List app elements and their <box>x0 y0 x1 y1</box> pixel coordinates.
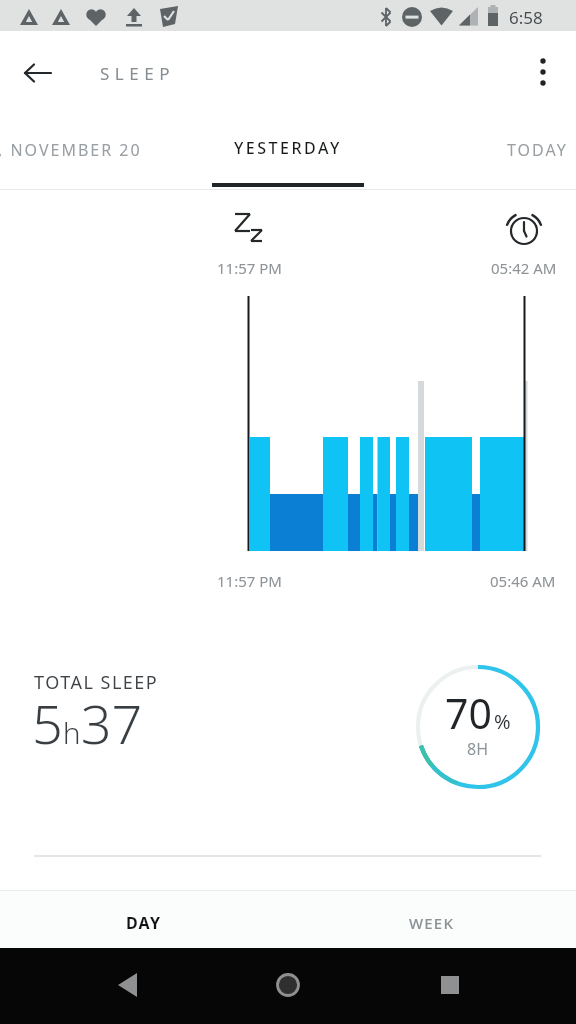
staticText: 5h37 <box>32 686 143 760</box>
staticText: SLEEP <box>100 62 175 85</box>
button[interactable]: DAY <box>0 891 288 948</box>
staticText: WEEK <box>409 913 455 933</box>
button[interactable] <box>14 56 64 90</box>
button[interactable] <box>524 53 562 91</box>
staticText: 11:57 PM <box>217 571 282 591</box>
staticText: 05:46 AM <box>490 571 556 591</box>
staticText: 8H <box>467 738 489 760</box>
button[interactable]: YESTERDAY <box>234 137 342 159</box>
button[interactable]: , NOVEMBER 20 <box>0 139 142 161</box>
staticText: 6:58 <box>509 6 543 29</box>
button[interactable] <box>264 961 312 1009</box>
button[interactable] <box>104 961 152 1009</box>
staticText: 70 % <box>445 685 511 741</box>
button[interactable]: WEEK <box>288 891 576 948</box>
button[interactable] <box>426 961 474 1009</box>
staticText: 11:57 PM <box>217 258 282 278</box>
staticText: DAY <box>126 912 162 934</box>
staticText: 05:42 AM <box>491 258 557 278</box>
staticText: TOTAL SLEEP <box>34 670 159 695</box>
button[interactable]: TODAY <box>507 139 576 161</box>
